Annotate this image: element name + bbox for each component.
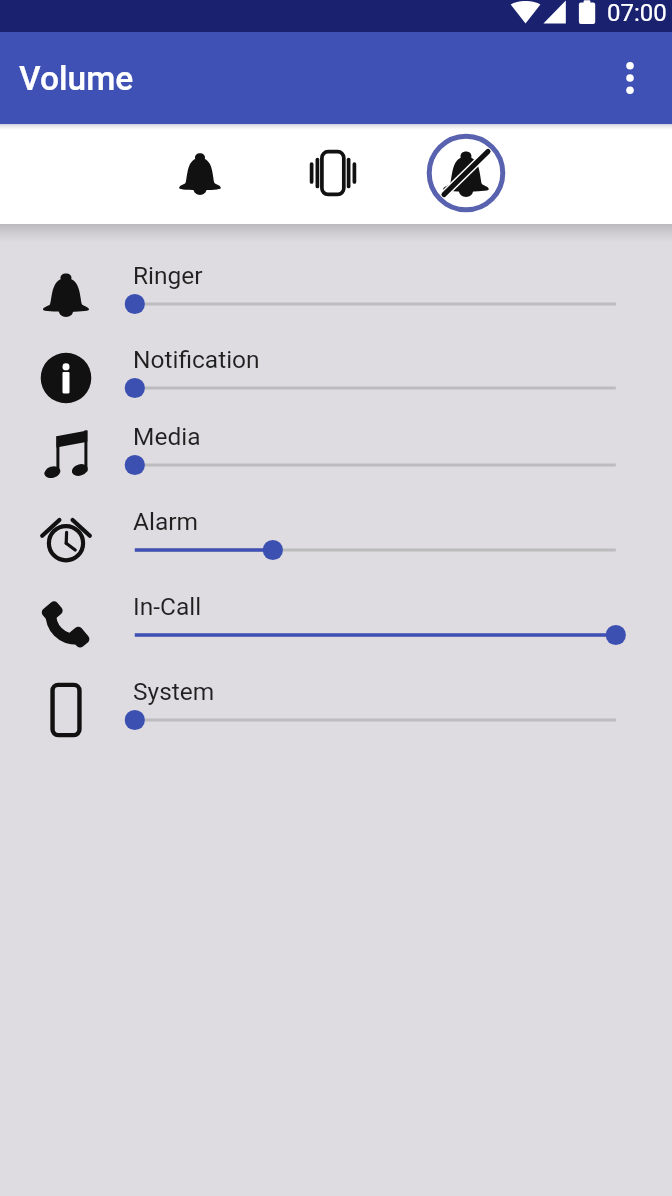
- button[interactable]: In-Call: [0, 583, 672, 667]
- staticText: Volume: [19, 59, 134, 98]
- button[interactable]: Vibrate mode: [287, 127, 379, 219]
- staticText: Alarm: [133, 507, 199, 536]
- button[interactable]: More options: [606, 54, 654, 102]
- button[interactable]: System: [0, 668, 672, 752]
- button[interactable]: Notification: [0, 336, 672, 420]
- button[interactable]: Alarm: [0, 498, 672, 582]
- button[interactable]: Ringer: [0, 252, 672, 336]
- staticText: In-Call: [133, 592, 202, 621]
- staticText: Media: [133, 422, 201, 451]
- button[interactable]: Silent mode: [420, 127, 512, 219]
- button[interactable]: Ring mode: [154, 127, 246, 219]
- staticText: Ringer: [133, 261, 203, 290]
- staticText: Notification: [133, 345, 260, 374]
- staticText: System: [133, 677, 215, 706]
- staticText: 07:00: [607, 0, 667, 27]
- button[interactable]: Media: [0, 413, 672, 497]
